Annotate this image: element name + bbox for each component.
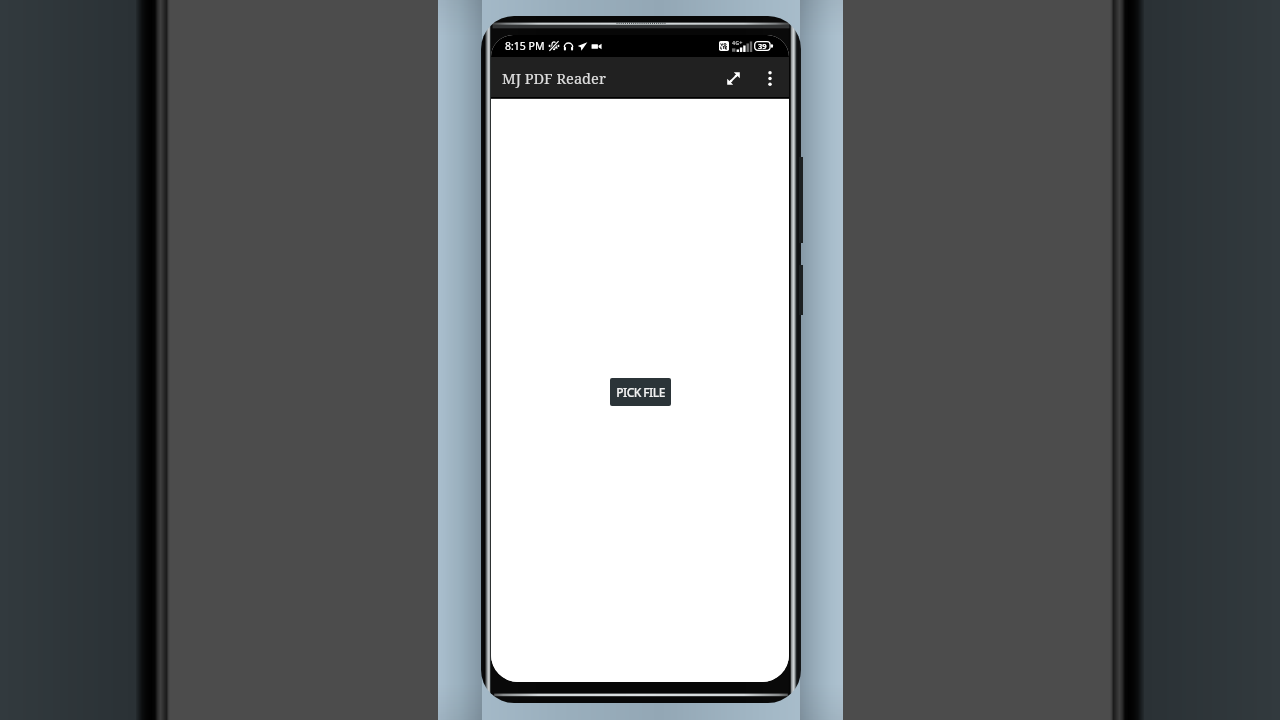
staticText: MJ PDF Reader bbox=[502, 68, 606, 88]
button[interactable]: More options bbox=[751, 59, 789, 97]
staticText: 4G+ bbox=[732, 39, 743, 46]
staticText: 39 bbox=[758, 41, 767, 51]
staticText: 8:15 PM bbox=[505, 39, 545, 53]
staticText: PICK FILE bbox=[616, 384, 665, 400]
button[interactable]: Fullscreen bbox=[707, 59, 745, 97]
button[interactable]: PICK FILE bbox=[610, 378, 671, 406]
